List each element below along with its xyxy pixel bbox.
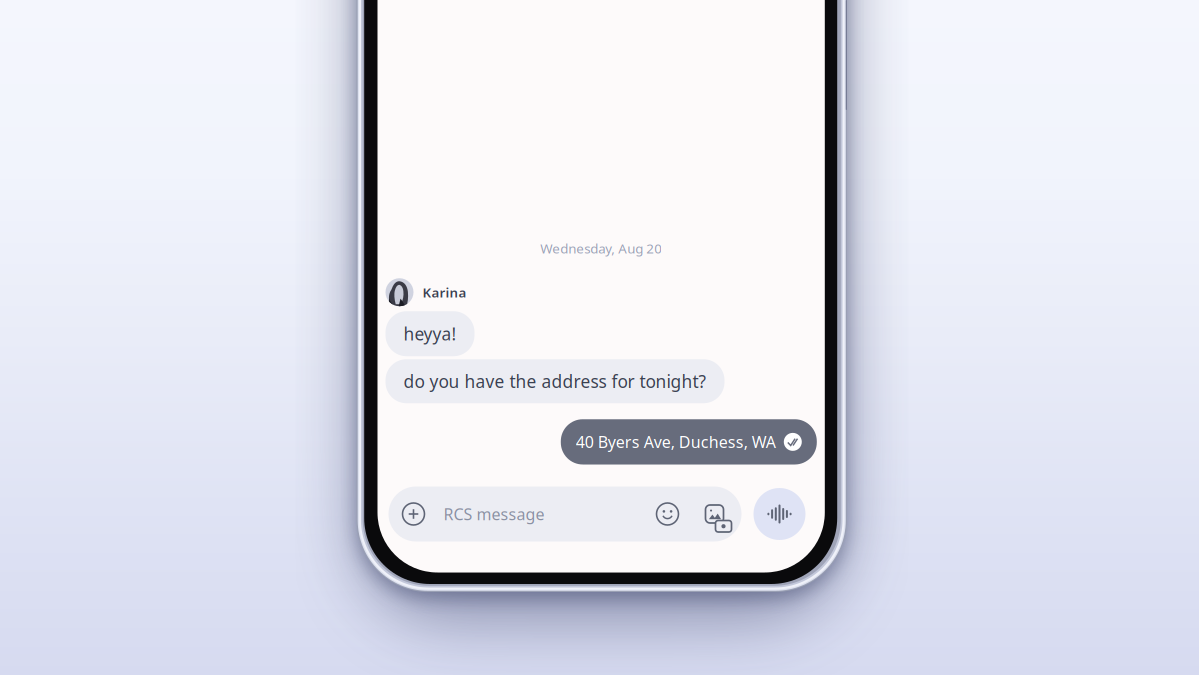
staticText: do you have the address for tonight? <box>403 370 706 393</box>
staticText: Wednesday, Aug 20 <box>540 239 662 257</box>
staticText: RCS message <box>443 503 544 525</box>
staticText: heyya! <box>403 322 456 345</box>
staticText: Karina <box>422 283 466 301</box>
staticText: 40 Byers Ave, Duchess, WA <box>576 431 776 452</box>
